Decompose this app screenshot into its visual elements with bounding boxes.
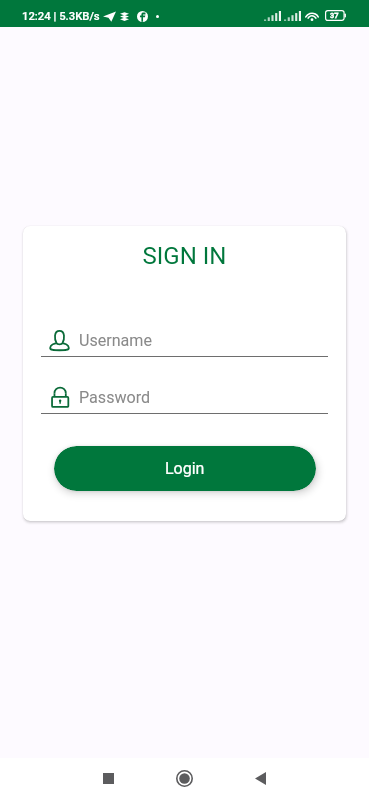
- staticText: 37: [330, 11, 339, 20]
- staticText: 12:24 | 5.3KB/s: [22, 10, 100, 23]
- staticText: Username: [79, 331, 153, 350]
- button[interactable]: Password: [41, 387, 328, 414]
- staticText: Login: [165, 459, 205, 478]
- button[interactable]: Back: [222, 757, 298, 799]
- staticText: SIGN IN: [23, 242, 346, 270]
- button[interactable]: Home: [146, 757, 222, 799]
- staticText: Password: [79, 388, 151, 407]
- button[interactable]: Login: [54, 446, 316, 491]
- button[interactable]: Username: [41, 330, 328, 357]
- button[interactable]: Recent apps: [70, 757, 146, 799]
